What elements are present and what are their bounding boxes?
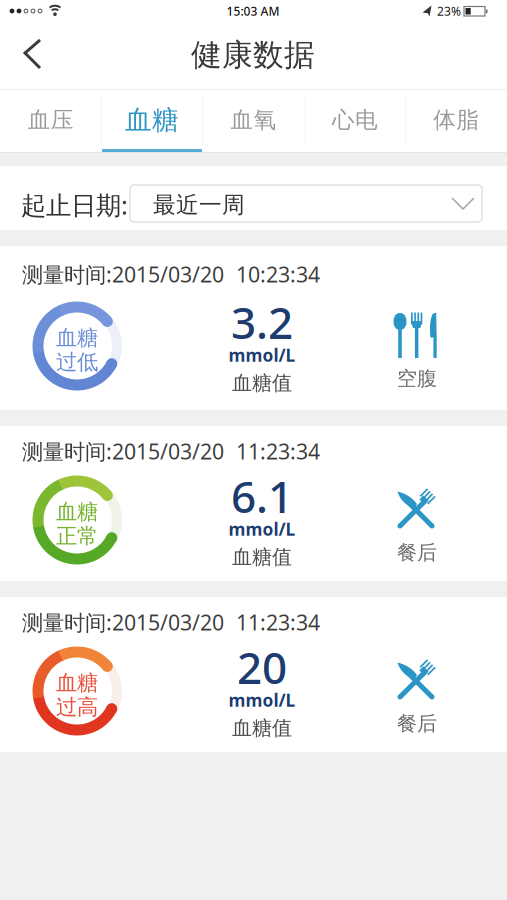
staticText: 20: [237, 638, 287, 696]
staticText: 血糖值: [232, 371, 292, 395]
staticText: 最近一周: [153, 191, 245, 219]
button[interactable]: 心电: [304, 90, 406, 152]
staticText: 心电: [332, 106, 378, 134]
staticText: 体脂: [433, 106, 479, 134]
button[interactable]: 血糖: [101, 90, 203, 152]
staticText: mmol/L: [228, 343, 295, 366]
button[interactable]: 最近一周: [130, 185, 482, 222]
button[interactable]: 体脂: [406, 90, 507, 152]
staticText: 餐后: [397, 711, 437, 736]
staticText: 血糖: [56, 499, 98, 525]
staticText: 测量时间:2015/03/20 10:23:34: [22, 260, 320, 288]
staticText: 健康数据: [191, 36, 315, 74]
staticText: 测量时间:2015/03/20 11:23:34: [22, 608, 320, 636]
staticText: 血氧: [230, 106, 276, 134]
staticText: 过低: [56, 349, 98, 375]
button[interactable]: Back: [8, 32, 52, 76]
staticText: 23%: [437, 3, 461, 19]
staticText: mmol/L: [228, 517, 295, 540]
staticText: 餐后: [397, 540, 437, 565]
staticText: 起止日期:: [21, 188, 128, 222]
staticText: 血糖值: [232, 716, 292, 740]
staticText: 空腹: [397, 366, 437, 391]
staticText: mmol/L: [228, 688, 295, 711]
staticText: 血糖: [125, 104, 179, 136]
staticText: 15:03 AM: [226, 3, 279, 19]
staticText: 血糖: [56, 325, 98, 351]
button[interactable]: 血压: [0, 90, 101, 152]
staticText: 正常: [56, 523, 98, 549]
staticText: 血糖: [56, 670, 98, 696]
staticText: 测量时间:2015/03/20 11:23:34: [22, 437, 320, 465]
staticText: 3.2: [231, 293, 293, 351]
staticText: 6.1: [231, 467, 293, 525]
staticText: 血糖值: [232, 545, 292, 569]
staticText: 血压: [28, 106, 74, 134]
button[interactable]: 血氧: [203, 90, 304, 152]
staticText: 过高: [56, 694, 98, 720]
